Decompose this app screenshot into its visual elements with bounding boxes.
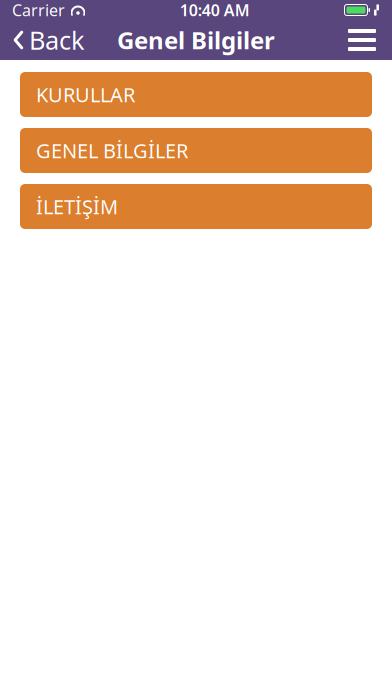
staticText: Carrier <box>12 0 65 21</box>
button[interactable]: Back <box>0 20 95 60</box>
staticText: Genel Bilgiler <box>117 24 275 56</box>
button[interactable]: KURULLAR <box>20 72 372 117</box>
staticText: GENEL BİLGİLER <box>36 137 188 164</box>
staticText: Back <box>29 23 85 57</box>
staticText: İLETİŞİM <box>36 193 118 220</box>
button[interactable]: GENEL BİLGİLER <box>20 128 372 173</box>
button[interactable]: Menu <box>332 20 392 60</box>
staticText: 10:40 AM <box>180 0 250 21</box>
staticText: KURULLAR <box>36 81 135 108</box>
button[interactable]: İLETİŞİM <box>20 184 372 229</box>
